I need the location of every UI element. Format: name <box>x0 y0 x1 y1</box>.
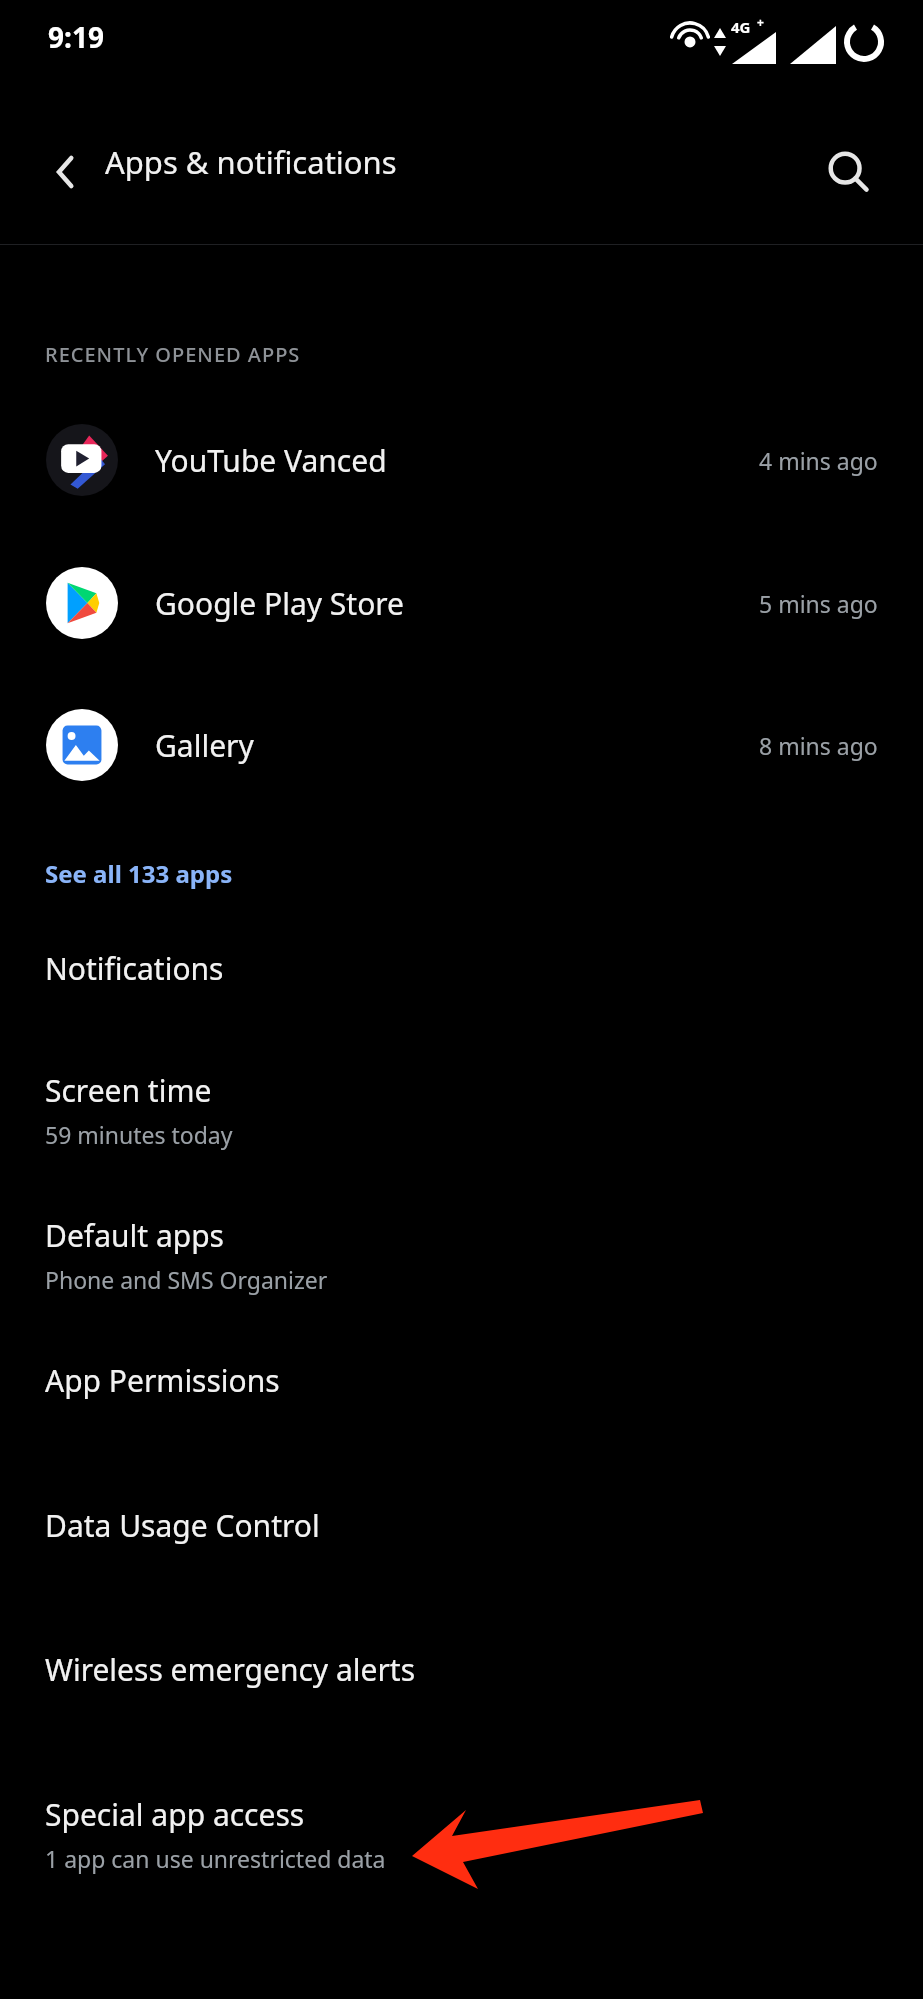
staticText: Wireless emergency alerts <box>45 1649 416 1690</box>
staticText: 4 mins ago <box>759 445 878 476</box>
button[interactable]: See all 133 apps <box>20 840 420 906</box>
staticText: Default apps <box>45 1215 224 1256</box>
staticText: See all 133 apps <box>45 857 233 890</box>
staticText: Gallery <box>155 725 254 766</box>
staticText: 4G <box>731 17 751 37</box>
staticText: 5 mins ago <box>759 588 878 619</box>
button[interactable]: Data Usage Control <box>0 1497 923 1617</box>
button[interactable]: Notifications <box>0 940 923 1060</box>
staticText: Notifications <box>45 948 224 989</box>
button[interactable]: Google Play Store <box>0 537 923 669</box>
staticText: Special app access <box>45 1794 305 1835</box>
staticText: Google Play Store <box>155 583 405 624</box>
button[interactable]: Search <box>800 124 896 220</box>
staticText: 9:19 <box>48 18 104 56</box>
button[interactable]: Default apps <box>0 1207 923 1327</box>
staticText: Phone and SMS Organizer <box>45 1264 328 1295</box>
button[interactable]: Wireless emergency alerts <box>0 1641 923 1761</box>
staticText: RECENTLY OPENED APPS <box>45 341 301 368</box>
button[interactable]: Back <box>18 124 114 220</box>
staticText: Data Usage Control <box>45 1505 320 1546</box>
button[interactable]: App Permissions <box>0 1352 923 1472</box>
staticText: 59 minutes today <box>45 1119 233 1150</box>
staticText: Apps & notifications <box>105 141 397 183</box>
staticText: Screen time <box>45 1070 212 1111</box>
button[interactable]: Special app access <box>0 1786 923 1906</box>
staticText: App Permissions <box>45 1360 280 1401</box>
button[interactable]: Screen time <box>0 1062 923 1182</box>
button[interactable]: YouTube Vanced <box>0 394 923 526</box>
staticText: YouTube Vanced <box>155 440 387 481</box>
staticText: 1 app can use unrestricted data <box>45 1843 386 1874</box>
staticText: 8 mins ago <box>759 730 878 761</box>
staticText: + <box>757 14 764 30</box>
button[interactable]: Gallery <box>0 679 923 811</box>
